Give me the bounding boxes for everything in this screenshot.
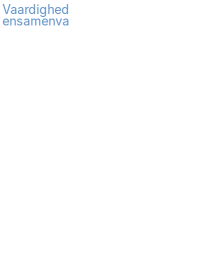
staticText: Vaardighed: [2, 2, 69, 17]
staticText: ensamenva: [2, 14, 69, 29]
